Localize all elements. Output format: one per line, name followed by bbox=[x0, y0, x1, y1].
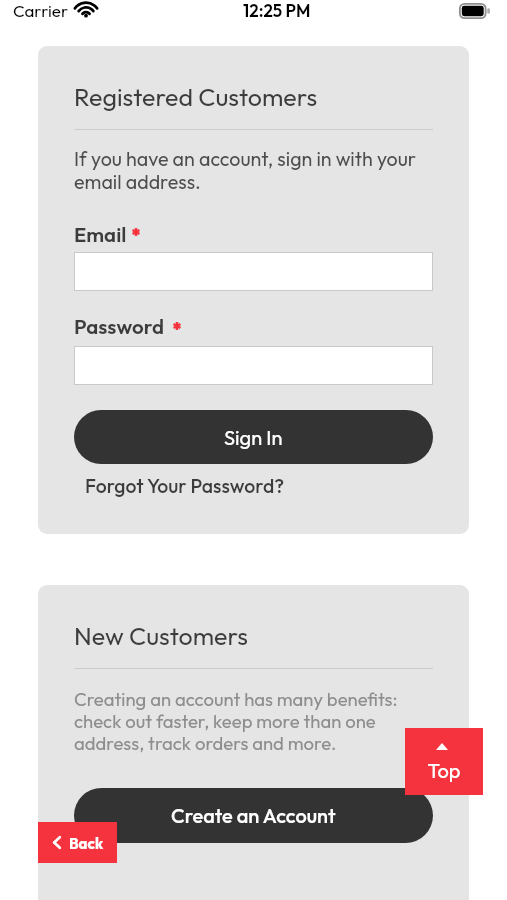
button[interactable]: Create an Account bbox=[74, 788, 433, 843]
staticText: New Customers bbox=[74, 620, 248, 652]
staticText: If you have an account, sign in with you… bbox=[74, 148, 433, 194]
button[interactable]: Email input field bbox=[74, 252, 433, 291]
staticText: Forgot Your Password? bbox=[85, 473, 285, 498]
staticText: 12:25 PM bbox=[243, 0, 311, 21]
staticText: Email bbox=[74, 221, 127, 247]
button[interactable]: Password input field bbox=[74, 346, 433, 385]
button[interactable]: Forgot Your Password? bbox=[77, 469, 293, 502]
staticText: Password bbox=[74, 313, 164, 339]
staticText: Creating an account has many benefits: c… bbox=[74, 689, 433, 755]
staticText: Back bbox=[69, 834, 104, 853]
staticText: Top bbox=[405, 758, 483, 783]
staticText: Create an Account bbox=[171, 803, 336, 828]
staticText: Sign In bbox=[224, 425, 283, 450]
staticText: Registered Customers bbox=[74, 81, 318, 113]
button[interactable]: Scroll to top bbox=[405, 728, 483, 795]
button[interactable]: Back bbox=[38, 822, 117, 863]
staticText: Carrier bbox=[13, 0, 69, 21]
button[interactable]: Sign In bbox=[74, 410, 433, 464]
